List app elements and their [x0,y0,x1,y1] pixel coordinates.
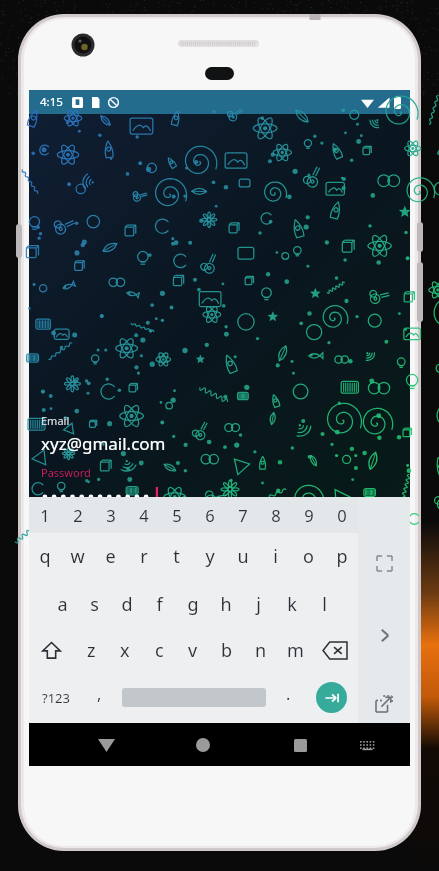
button[interactable]: n [244,628,278,672]
staticText: 1 [40,504,50,526]
button[interactable]: q [29,533,61,580]
button[interactable]: p [325,533,358,580]
staticText: 7 [238,504,248,526]
staticText: 4:15 [40,94,63,110]
button[interactable]: i [259,533,292,580]
button[interactable]: y [193,533,226,580]
staticText: g [187,592,199,617]
staticText: w [70,544,85,569]
staticText: 5 [172,504,182,526]
button[interactable]: m [278,628,312,672]
button[interactable]: Hide keyboard [348,726,386,764]
button[interactable]: Password [41,465,400,508]
staticText: x [120,638,130,663]
button[interactable]: v [176,628,210,672]
button[interactable]: g [176,580,209,628]
staticText: r [140,544,148,569]
staticText: f [156,592,163,617]
staticText: o [303,544,314,569]
staticText: Password [41,465,91,480]
button[interactable]: 2 [61,497,94,533]
staticText: , [97,683,102,705]
button[interactable]: l [308,580,341,628]
button[interactable]: f [143,580,176,628]
button[interactable]: 6 [193,497,226,533]
staticText: u [237,544,249,569]
button[interactable]: ?123 [29,672,83,723]
staticText: Email [41,413,70,428]
staticText: . [286,683,291,705]
button[interactable]: e [94,533,127,580]
button[interactable]: Fullscreen [362,541,406,585]
staticText: l [322,592,327,617]
staticText: b [221,638,233,663]
staticText: 9 [304,504,314,526]
staticText: s [90,592,99,617]
staticText: p [336,544,348,569]
button[interactable]: a [46,580,78,628]
staticText: i [273,544,278,569]
staticText: 0 [337,504,347,526]
staticText: ?123 [42,689,70,707]
button[interactable]: 5 [160,497,193,533]
staticText: t [173,544,180,569]
button[interactable]: z [74,628,108,672]
button[interactable]: Space [115,672,272,723]
staticText: 6 [205,504,215,526]
staticText: e [105,544,116,569]
staticText: n [255,638,267,663]
staticText: v [188,638,198,663]
button[interactable]: t [160,533,193,580]
staticText: 4 [139,504,149,526]
staticText: 8 [271,504,281,526]
staticText: a [57,592,68,617]
button[interactable]: s [78,580,110,628]
staticText: q [39,544,51,569]
staticText: 3 [106,504,116,526]
button[interactable]: r [127,533,160,580]
button[interactable]: Enter [304,672,358,723]
staticText: j [256,592,261,617]
staticText: c [155,638,164,663]
staticText: d [121,592,133,617]
staticText: y [205,544,215,569]
button[interactable]: c [142,628,176,672]
button[interactable]: 3 [94,497,127,533]
button[interactable]: 7 [226,497,259,533]
button[interactable]: Open in new window [362,685,406,723]
button[interactable]: h [209,580,242,628]
button[interactable]: Recent apps [279,724,321,766]
staticText: k [287,592,297,617]
button[interactable]: , [83,672,115,723]
button[interactable]: Home [182,724,224,766]
button[interactable]: Back [85,724,127,766]
button[interactable]: u [226,533,259,580]
button[interactable]: . [272,672,304,723]
button[interactable]: 1 [29,497,61,533]
button[interactable]: 9 [292,497,325,533]
button[interactable]: Email [41,413,400,455]
staticText: 2 [73,504,83,526]
staticText: z [87,638,96,663]
button[interactable]: w [61,533,94,580]
staticText: h [220,592,232,617]
button[interactable]: 0 [325,497,358,533]
button[interactable]: k [275,580,308,628]
button[interactable]: o [292,533,325,580]
button[interactable]: d [110,580,143,628]
staticText: xyz@gmail.com [41,432,166,455]
button[interactable]: 8 [259,497,292,533]
button[interactable]: Next [362,613,406,657]
button[interactable]: 4 [127,497,160,533]
button[interactable]: Backspace [312,628,358,672]
button[interactable]: b [210,628,244,672]
button[interactable]: x [108,628,142,672]
button[interactable]: j [242,580,275,628]
button[interactable]: Shift [29,628,74,672]
staticText: m [287,638,304,663]
